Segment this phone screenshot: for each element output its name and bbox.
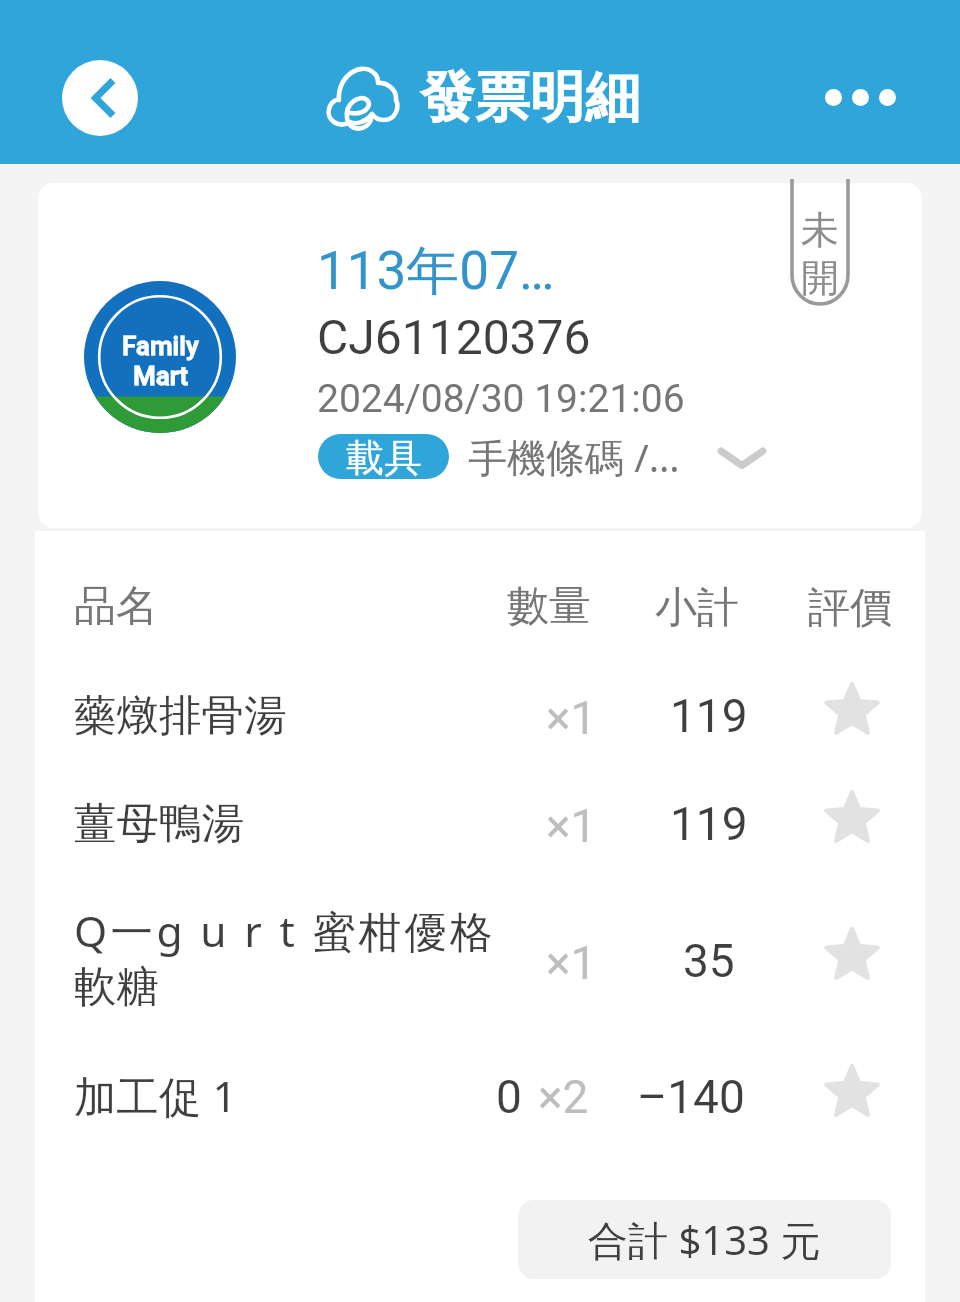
staticText: ×1 [546, 936, 597, 990]
staticText: 小計 [655, 582, 739, 635]
button[interactable]: Rate item [823, 927, 881, 985]
button[interactable]: Rate item [823, 682, 881, 740]
staticText: ×2 [538, 1070, 589, 1124]
staticText: 未 [801, 206, 839, 254]
staticText: 119 [670, 689, 748, 743]
staticText: 薑母鴨湯 [74, 797, 244, 851]
button[interactable] [35, 1043, 925, 1151]
button[interactable]: 合計 $133 元 [518, 1200, 891, 1279]
staticText: 2024/08/30 19:21:06 [317, 376, 685, 422]
staticText: 藥燉排骨湯 [74, 689, 287, 743]
button[interactable] [35, 906, 925, 1014]
staticText: 開 [801, 254, 839, 302]
staticText: 合計 $133 元 [588, 1212, 821, 1267]
staticText: 載具 [346, 434, 422, 479]
button[interactable]: Expand carrier details [717, 431, 767, 481]
staticText: 數量 [507, 580, 591, 633]
staticText: –140 [637, 1070, 745, 1124]
staticText: 軟糖 [74, 960, 159, 1014]
button[interactable]: More options [813, 77, 908, 118]
staticText: 119 [670, 797, 748, 851]
staticText: 評價 [808, 582, 892, 635]
button[interactable]: 載具 [318, 434, 449, 479]
staticText: 手機條碼 /… [468, 430, 680, 483]
staticText: 加工促 1 [74, 1067, 237, 1125]
staticText: 0 [496, 1070, 522, 1124]
staticText: Mart [133, 361, 189, 391]
staticText: CJ61120376 [317, 309, 591, 365]
staticText: ×1 [546, 799, 597, 853]
staticText: 發票明細 [420, 63, 640, 132]
staticText: Q一g u r t 蜜柑優格 [74, 902, 497, 960]
button[interactable] [38, 183, 922, 528]
button[interactable] [35, 769, 925, 877]
staticText: Family [122, 331, 199, 361]
staticText: 113年07… [317, 238, 555, 305]
staticText: ×1 [546, 691, 597, 745]
button[interactable]: Rate item [823, 790, 881, 848]
button[interactable]: Rate item [823, 1064, 881, 1122]
staticText: 35 [683, 934, 735, 988]
button[interactable] [35, 661, 925, 769]
staticText: 品名 [74, 580, 158, 633]
button[interactable]: Back [62, 60, 138, 136]
